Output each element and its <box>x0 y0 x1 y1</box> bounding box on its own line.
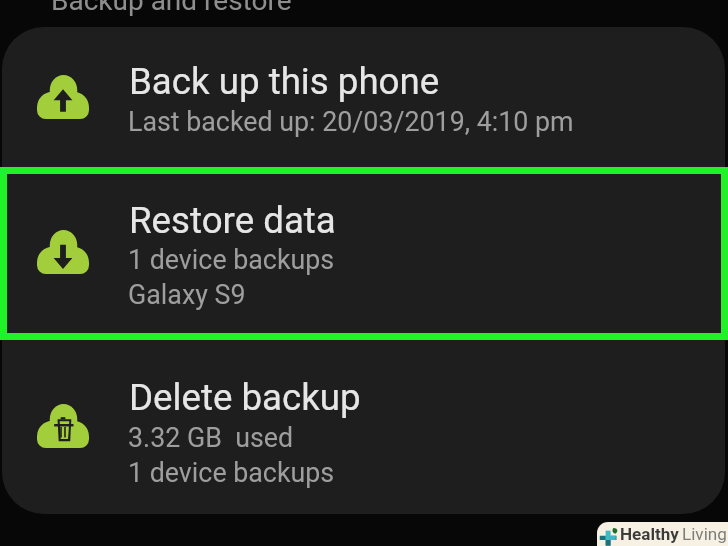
staticText: Galaxy S9 <box>128 279 246 310</box>
other: Delete <box>37 404 89 448</box>
button[interactable]: Restore <box>2 167 725 340</box>
staticText: Living <box>682 524 727 544</box>
button[interactable]: Delete <box>2 340 725 514</box>
staticText: Restore data <box>129 199 336 242</box>
staticText: 3.32 GB used <box>128 422 294 453</box>
staticText: Last backed up: 20/03/2019, 4:10 pm <box>128 106 574 137</box>
button[interactable]: Backup and restore <box>51 0 292 17</box>
staticText: 1 device backups <box>128 244 335 275</box>
staticText: Healthy <box>620 524 679 544</box>
staticText: 1 device backups <box>128 457 335 488</box>
staticText: Back up this phone <box>129 60 440 103</box>
other: Back up <box>37 75 89 119</box>
button[interactable]: Healthy <box>597 522 728 546</box>
button[interactable]: Back up <box>2 27 725 167</box>
staticText: Delete backup <box>129 376 361 419</box>
other: Restore <box>37 230 89 274</box>
staticText: Backup and restore <box>51 0 292 17</box>
